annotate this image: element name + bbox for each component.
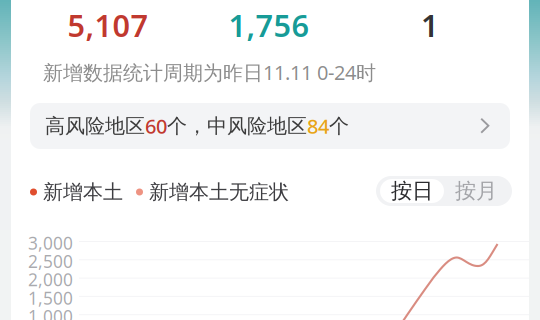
staticText: 2,500 <box>28 250 73 273</box>
button[interactable]: 按日 <box>380 179 444 203</box>
staticText: 新增本土无症状 <box>149 180 289 204</box>
staticText: 5,107 <box>67 5 148 45</box>
staticText: 新增本土 <box>43 180 123 204</box>
staticText: 个 <box>329 114 349 138</box>
staticText: 按月 <box>455 178 497 204</box>
staticText: 新增数据统计周期为昨日11.11 0-24时 <box>43 59 376 86</box>
staticText: 1,756 <box>228 5 309 45</box>
staticText: 1,000 <box>28 305 73 320</box>
button[interactable]: 高风险地区 <box>30 103 510 149</box>
staticText: 2,000 <box>28 268 73 291</box>
staticText: 按日 <box>391 178 433 204</box>
staticText: 1 <box>421 5 439 45</box>
staticText: 84 <box>307 113 329 139</box>
button[interactable]: 按月 <box>444 179 508 203</box>
button[interactable]: 新增本土 <box>30 179 289 205</box>
staticText: 高风险地区 <box>45 114 145 138</box>
staticText: 个，中风险地区 <box>167 114 307 138</box>
staticText: 60 <box>145 113 167 139</box>
staticText: 3,000 <box>28 231 73 254</box>
staticText: 1,500 <box>28 286 73 309</box>
